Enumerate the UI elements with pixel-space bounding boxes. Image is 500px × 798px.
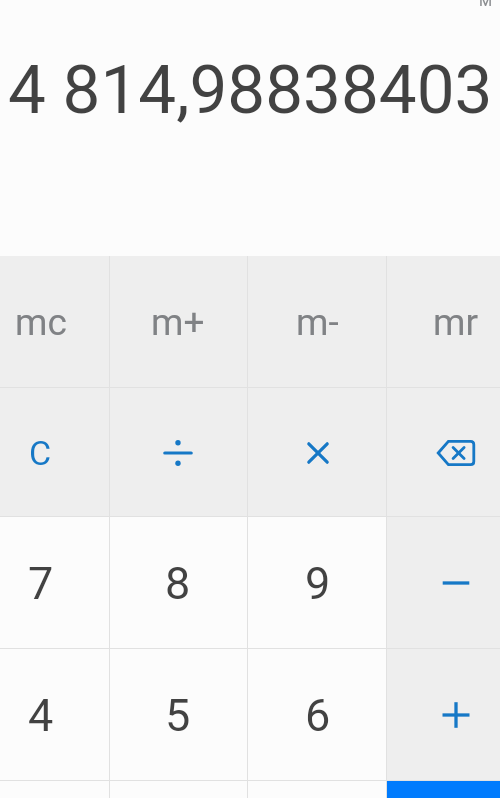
button[interactable]: 5 xyxy=(109,649,247,781)
staticText: M xyxy=(479,0,493,10)
staticText: 6 xyxy=(305,689,331,742)
button[interactable]: Multiply xyxy=(248,388,387,517)
staticText: 4 814,98838403 xyxy=(8,50,493,129)
staticText: m+ xyxy=(151,301,205,344)
button[interactable]: mr xyxy=(386,256,500,388)
button[interactable]: mc xyxy=(0,256,110,388)
staticText: C xyxy=(29,433,52,473)
button[interactable]: Equals xyxy=(386,781,500,798)
staticText: m- xyxy=(296,301,339,344)
button[interactable]: Divide xyxy=(109,388,247,517)
button[interactable]: m+ xyxy=(109,256,247,388)
button[interactable]: 7 xyxy=(0,517,110,649)
staticText: 4 xyxy=(28,689,54,742)
button[interactable]: Plus xyxy=(386,649,500,781)
button[interactable]: 8 xyxy=(109,517,247,649)
staticText: 8 xyxy=(165,557,191,610)
button[interactable]: 9 xyxy=(248,517,387,649)
button[interactable]: Minus xyxy=(386,517,500,649)
button[interactable]: m- xyxy=(248,256,387,388)
button[interactable]: 6 xyxy=(248,649,387,781)
button[interactable]: 4 xyxy=(0,649,110,781)
staticText: 9 xyxy=(305,557,331,610)
staticText: mr xyxy=(433,301,478,344)
staticText: mc xyxy=(15,301,67,344)
button[interactable]: Backspace xyxy=(386,388,500,517)
staticText: 7 xyxy=(28,557,54,610)
staticText: 5 xyxy=(165,689,191,742)
button[interactable]: C xyxy=(0,388,110,517)
